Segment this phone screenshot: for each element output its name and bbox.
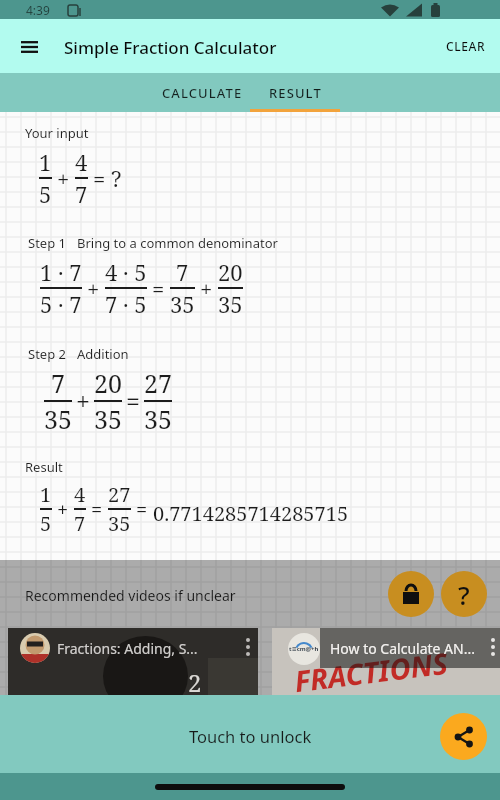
staticText: =	[93, 163, 106, 193]
button[interactable]: RESULT	[250, 73, 340, 112]
staticText: t≡cm@+h	[289, 645, 319, 653]
staticText: CLEAR	[446, 38, 486, 54]
button[interactable]: FRACTIONS	[272, 628, 500, 695]
staticText: 7	[75, 179, 88, 209]
staticText: 35	[108, 510, 131, 537]
staticText: 4 · 5	[105, 257, 147, 287]
button[interactable]	[388, 571, 434, 617]
staticText: 1	[40, 481, 52, 508]
staticText: +	[57, 163, 70, 193]
staticText: 35	[218, 289, 243, 319]
staticText: 7	[51, 366, 65, 400]
staticText: Addition	[77, 345, 129, 363]
staticText: 2	[188, 666, 202, 699]
staticText: 35	[170, 289, 195, 319]
staticText: Result	[25, 458, 63, 476]
button[interactable]: ?	[441, 571, 487, 617]
button[interactable]: Touch to unlock	[0, 695, 500, 773]
staticText: Step 1	[28, 234, 66, 252]
staticText: How to Calculate AN...	[330, 639, 475, 658]
button[interactable]: CALCULATE	[150, 73, 255, 112]
staticText: 35	[94, 402, 122, 436]
staticText: ?	[458, 577, 470, 612]
staticText: Bring to a common denominator	[77, 234, 278, 252]
staticText: 4	[74, 481, 86, 508]
button[interactable]	[440, 713, 487, 760]
staticText: 4	[75, 147, 88, 177]
staticText: RESULT	[269, 84, 322, 102]
staticText: =	[91, 496, 103, 523]
staticText: 1	[39, 147, 52, 177]
staticText: 1 · 7	[40, 257, 82, 287]
staticText: 7 · 5	[105, 289, 147, 319]
staticText: +	[76, 384, 90, 418]
staticText: FRACTIONS	[292, 643, 450, 700]
staticText: +	[200, 273, 213, 303]
staticText: =	[126, 384, 140, 418]
staticText: =	[152, 273, 165, 303]
staticText: +	[57, 496, 69, 523]
staticText: 0.7714285714285715	[153, 500, 349, 527]
staticText: 5 · 7	[40, 289, 82, 319]
staticText: 4:39	[26, 2, 50, 18]
button[interactable]: 2	[8, 628, 258, 695]
button[interactable]: CLEAR	[440, 31, 492, 61]
staticText: 35	[144, 402, 172, 436]
staticText: Touch to unlock	[189, 725, 312, 747]
staticText: Step 2	[28, 345, 66, 363]
staticText: Recommended videos if unclear	[25, 586, 236, 605]
staticText: 7	[74, 510, 86, 537]
staticText: ?	[111, 163, 122, 193]
staticText: CALCULATE	[162, 84, 243, 102]
staticText: 27	[108, 481, 131, 508]
staticText: Fractions: Adding, S...	[57, 639, 198, 658]
staticText: Your input	[25, 124, 89, 142]
staticText: Simple Fraction Calculator	[64, 36, 277, 59]
staticText: 27	[144, 366, 172, 400]
staticText: 5	[40, 510, 52, 537]
staticText: +	[87, 273, 100, 303]
staticText: =	[136, 496, 148, 523]
staticText: 5	[39, 179, 52, 209]
button[interactable]	[14, 36, 46, 58]
staticText: 7	[176, 257, 189, 287]
staticText: 20	[94, 366, 122, 400]
staticText: 35	[44, 402, 72, 436]
staticText: 20	[218, 257, 243, 287]
